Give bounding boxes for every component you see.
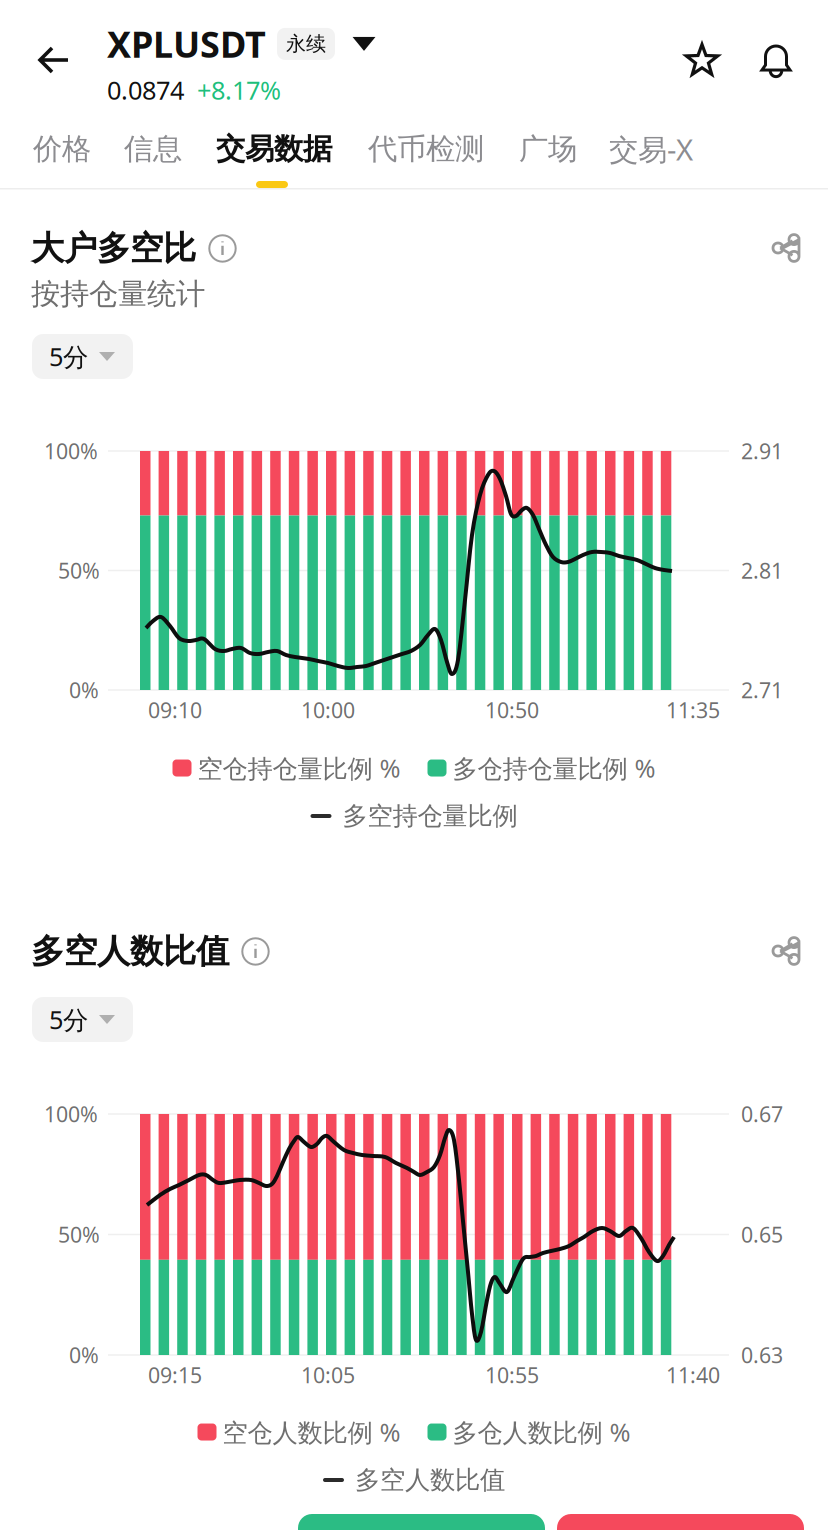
staticText: 100% — [44, 437, 98, 465]
staticText: 信息 — [124, 131, 182, 167]
staticText: 永续 — [286, 32, 326, 56]
button[interactable]: Back — [24, 30, 84, 90]
staticText: 11:35 — [666, 696, 720, 724]
staticText: +8.17% — [197, 73, 281, 107]
staticText: 0.65 — [741, 1220, 783, 1249]
staticText: 多空持仓量比例 — [342, 800, 517, 831]
button[interactable]: Share 大户多空比 — [762, 226, 810, 270]
staticText: 广场 — [519, 131, 577, 167]
button[interactable]: 交易数据 — [216, 126, 332, 172]
staticText: 交易-X — [609, 129, 693, 168]
button[interactable]: 广场 — [519, 126, 577, 172]
staticText: 0% — [69, 1341, 99, 1369]
staticText: 10:05 — [301, 1361, 355, 1389]
staticText: 11:40 — [666, 1361, 720, 1389]
staticText: 0.67 — [741, 1100, 783, 1128]
staticText: 多仓人数比例 % — [452, 1415, 630, 1449]
staticText: 100% — [44, 1100, 98, 1128]
staticText: 按持仓量统计 — [31, 276, 205, 312]
staticText: 5分 — [49, 1003, 88, 1036]
staticText: 2.81 — [741, 556, 783, 585]
staticText: 2.71 — [741, 676, 783, 704]
staticText: 空仓持仓量比例 % — [197, 751, 400, 785]
staticText: XPLUSDT — [107, 20, 266, 68]
button[interactable]: Short — [557, 1514, 804, 1530]
staticText: 代币检测 — [368, 131, 484, 167]
button[interactable]: Switch contract — [347, 28, 381, 60]
button[interactable]: Price alert — [747, 30, 805, 92]
staticText: 09:10 — [148, 696, 202, 724]
staticText: 0.0874 — [107, 73, 184, 107]
staticText: 多空人数比值 — [31, 931, 229, 972]
button[interactable]: 5分 — [32, 334, 133, 379]
staticText: 50% — [58, 556, 100, 585]
staticText: 0.63 — [741, 1341, 783, 1369]
button[interactable]: 代币检测 — [368, 126, 484, 172]
staticText: 5分 — [49, 340, 88, 373]
staticText: 10:50 — [485, 696, 539, 724]
staticText: 空仓人数比例 % — [222, 1415, 400, 1449]
button[interactable]: 5分 — [32, 997, 133, 1042]
button[interactable]: Positions — [0, 1490, 828, 1530]
button[interactable]: Share 多空人数比值 — [762, 929, 810, 973]
button[interactable]: Home — [0, 1490, 828, 1530]
button[interactable]: 交易-X — [609, 126, 693, 172]
staticText: 50% — [58, 1220, 100, 1249]
button[interactable]: Support — [0, 1490, 828, 1530]
button[interactable]: 信息 — [124, 126, 182, 172]
staticText: 大户多空比 — [31, 228, 196, 269]
staticText: 0% — [69, 676, 99, 704]
button[interactable]: Add to favourites — [673, 30, 731, 92]
staticText: 多空人数比值 — [355, 1464, 505, 1495]
staticText: 多仓持仓量比例 % — [452, 751, 655, 785]
staticText: 10:55 — [485, 1361, 539, 1389]
button[interactable]: 价格 — [33, 126, 91, 172]
staticText: 价格 — [33, 131, 91, 167]
staticText: 2.91 — [741, 437, 783, 465]
staticText: 09:15 — [148, 1361, 202, 1389]
staticText: 10:00 — [301, 696, 355, 724]
button[interactable]: Long — [298, 1514, 545, 1530]
staticText: 交易数据 — [216, 131, 332, 167]
